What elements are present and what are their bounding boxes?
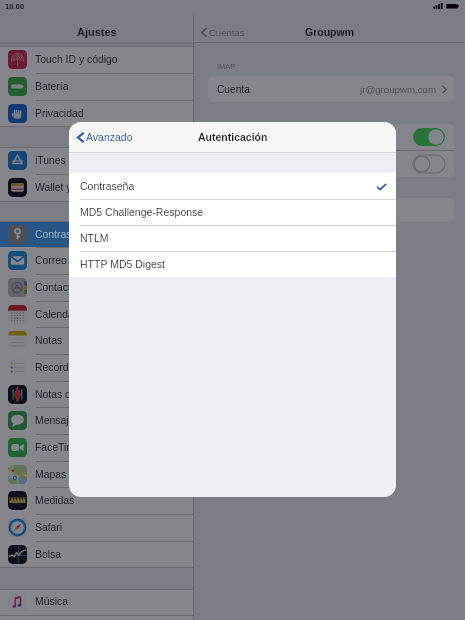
staticText: Avanzado <box>86 131 133 143</box>
button[interactable]: Contraseña <box>69 173 396 199</box>
staticText: Cuenta <box>217 84 250 95</box>
staticText: Groupwm <box>305 26 354 38</box>
button[interactable]: iTunes y App Store <box>0 147 193 174</box>
button[interactable]: Notas <box>208 151 454 177</box>
staticText: Ajustes <box>77 26 117 38</box>
button[interactable]: Notas <box>0 327 193 354</box>
button[interactable]: Correo <box>0 247 193 274</box>
button[interactable]: Contraseñas y cuentas <box>0 221 193 248</box>
button[interactable]: Touch ID y código <box>0 46 193 73</box>
staticText: Safari <box>35 522 63 534</box>
button[interactable]: Wallet y Apple Pay <box>0 174 193 201</box>
staticText: Bolsa <box>35 549 61 561</box>
button[interactable]: HTTP MD5 Digest <box>69 251 396 277</box>
staticText: Medidas <box>35 495 75 507</box>
staticText: Calendario <box>35 309 86 321</box>
staticText: Música <box>35 596 68 608</box>
staticText: NTLM <box>80 232 109 244</box>
button[interactable]: Correo <box>208 124 454 150</box>
staticText: Privacidad <box>35 108 84 120</box>
staticText: iTunes y App Store <box>35 155 123 167</box>
button[interactable]: MD5 Challenge-Response <box>69 199 396 224</box>
button[interactable]: Batería <box>0 73 193 100</box>
staticText: Mensajes <box>35 415 80 427</box>
button[interactable]: Avanzado <box>77 131 133 143</box>
button[interactable]: Bolsa <box>0 541 193 568</box>
button[interactable]: Cuenta <box>208 76 454 102</box>
staticText: Touch ID y código <box>35 54 118 66</box>
staticText: Contactos <box>35 282 82 294</box>
staticText: IMAP <box>217 62 236 70</box>
button[interactable]: Mensajes <box>0 407 193 434</box>
button[interactable]: Notas <box>413 155 445 173</box>
button[interactable]: Contactos <box>0 274 193 301</box>
staticText: Correo <box>217 132 249 143</box>
button[interactable]: Medidas <box>0 487 193 514</box>
staticText: FaceTime <box>35 442 81 454</box>
staticText: Notas de voz <box>35 389 96 401</box>
button[interactable]: Mapas <box>0 461 193 488</box>
button[interactable]: Notas de voz <box>0 381 193 408</box>
button[interactable]: Música <box>0 589 193 615</box>
staticText: Cuentas <box>209 27 245 38</box>
button[interactable]: NTLM <box>69 225 396 251</box>
staticText: MD5 Challenge-Response <box>80 206 204 218</box>
staticText: Autenticación <box>198 131 268 143</box>
staticText: HTTP MD5 Digest <box>80 258 165 270</box>
button[interactable]: Privacidad <box>0 100 193 127</box>
button[interactable]: Recordatorios <box>0 354 193 381</box>
staticText: Mapas <box>35 469 67 481</box>
staticText: Correo <box>35 255 67 267</box>
staticText: Recordatorios <box>35 362 100 374</box>
button[interactable]: Calendario <box>0 301 193 328</box>
button[interactable]: Safari <box>0 514 193 541</box>
staticText: jr@groupwm.com <box>360 84 437 95</box>
button[interactable]: Correo <box>413 128 445 146</box>
staticText: Wallet y Apple Pay <box>35 182 122 194</box>
staticText: Batería <box>35 81 69 93</box>
staticText: Contraseña <box>80 180 135 192</box>
staticText: Contraseñas y cuentas <box>35 229 142 241</box>
button[interactable]: FaceTime <box>0 434 193 461</box>
staticText: 10:00 <box>5 2 25 10</box>
button[interactable]: Cuentas <box>201 27 245 38</box>
staticText: Notas <box>35 335 63 347</box>
